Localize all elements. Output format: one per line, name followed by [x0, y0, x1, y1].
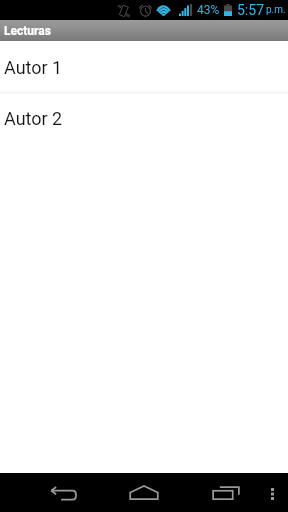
button[interactable]: Home: [104, 473, 184, 512]
staticText: Autor 1: [4, 57, 63, 78]
button[interactable]: Autor 1: [0, 42, 288, 92]
button[interactable]: Autor 2: [0, 93, 288, 143]
staticText: p.m.: [266, 4, 286, 16]
staticText: 5:57: [237, 2, 264, 18]
button[interactable]: Back: [0, 473, 104, 512]
staticText: Lecturas: [4, 24, 51, 38]
staticText: Autor 2: [4, 108, 63, 129]
button[interactable]: Recent apps: [184, 473, 260, 512]
button[interactable]: More options: [260, 473, 288, 512]
staticText: 43%: [197, 3, 220, 17]
